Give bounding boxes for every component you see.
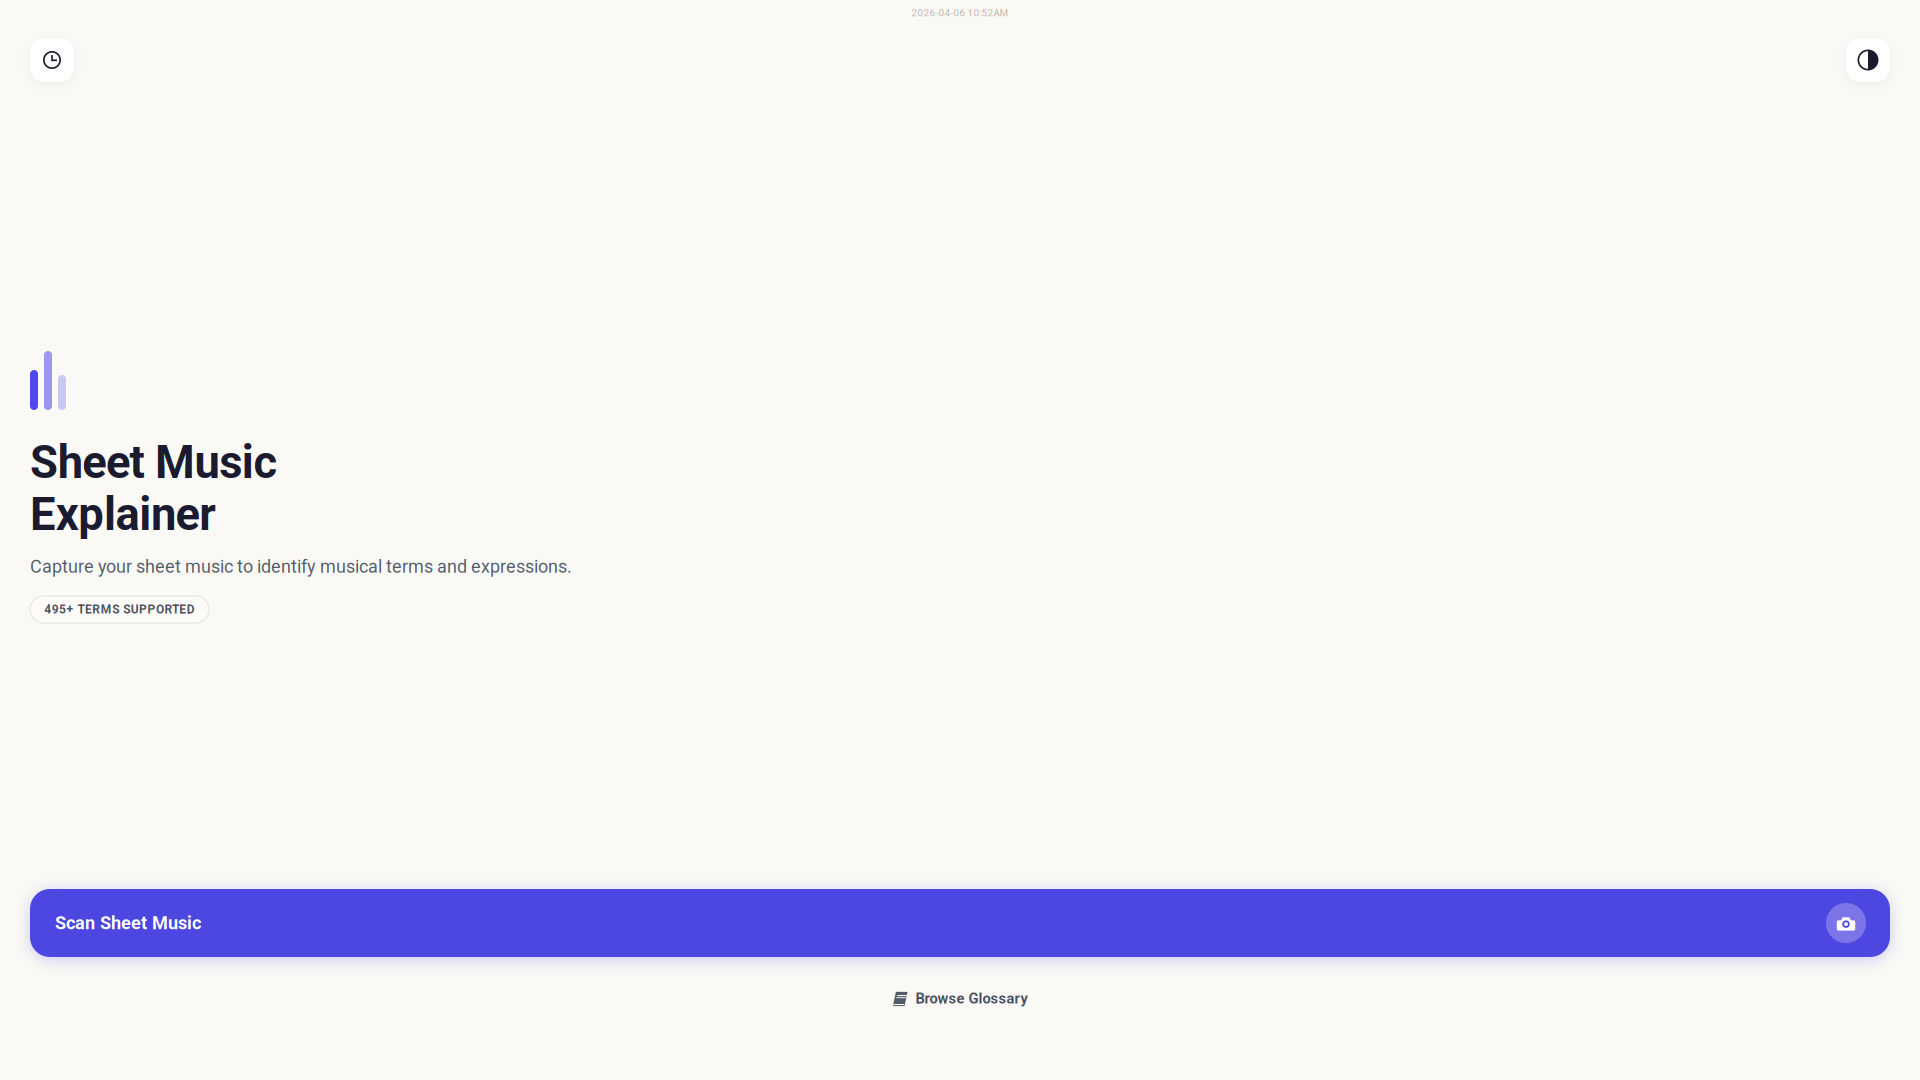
staticText: Sheet Music xyxy=(30,436,277,489)
button[interactable]: History xyxy=(30,38,74,82)
staticText: 495+ TERMS SUPPORTED xyxy=(44,602,195,617)
button[interactable]: Scan Sheet Music xyxy=(30,889,1890,957)
staticText: 2026-04-06 10:52AM xyxy=(911,7,1008,19)
staticText: Explainer xyxy=(30,488,216,541)
staticText: Capture your sheet music to identify mus… xyxy=(30,556,572,577)
staticText: Browse Glossary xyxy=(915,990,1027,1007)
button[interactable]: Toggle contrast xyxy=(1846,38,1890,82)
button[interactable]: Browse Glossary xyxy=(892,990,1027,1007)
staticText: Scan Sheet Music xyxy=(55,912,201,934)
